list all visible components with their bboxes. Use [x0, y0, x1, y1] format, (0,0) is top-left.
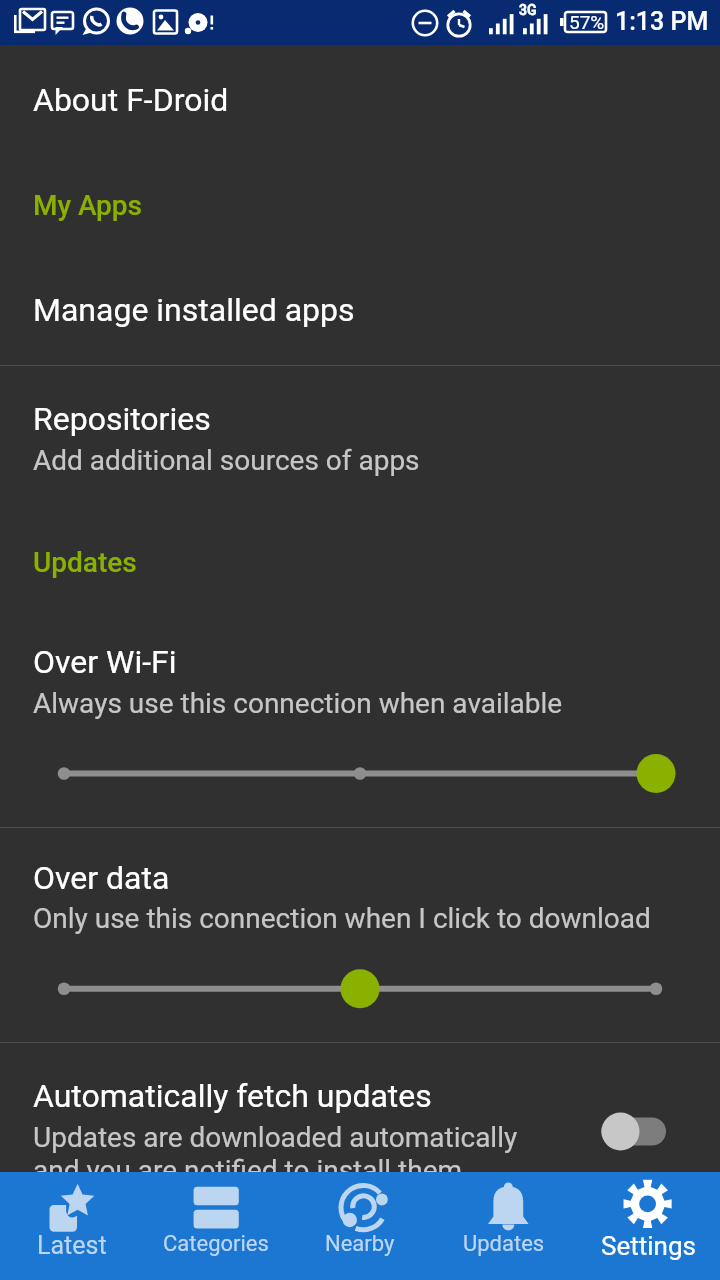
staticText: Only use this connection when I click to…: [33, 902, 651, 935]
staticText: 3G: [519, 2, 537, 18]
staticText: About F-Droid: [33, 81, 229, 119]
button[interactable]: Repositories: [0, 366, 720, 503]
button[interactable]: Nearby: [288, 1172, 432, 1280]
button[interactable]: Categories: [144, 1172, 288, 1280]
staticText: Categories: [163, 1231, 269, 1257]
button[interactable]: Over Wi-Fi: [0, 603, 720, 828]
staticText: Updates: [463, 1231, 545, 1257]
staticText: Always use this connection when availabl…: [33, 687, 563, 720]
staticText: Settings: [601, 1231, 696, 1261]
staticText: Latest: [37, 1231, 107, 1260]
staticText: Updates: [33, 546, 137, 579]
staticText: 57%: [569, 11, 605, 33]
button[interactable]: Manage installed apps: [0, 256, 720, 330]
staticText: Repositories: [33, 400, 211, 438]
staticText: Over Wi-Fi: [33, 643, 177, 681]
staticText: Updates are downloaded automatically and…: [33, 1121, 553, 1187]
button[interactable]: Over data: [0, 828, 720, 1042]
button[interactable]: Automatically fetch updates toggle, off: [590, 1107, 678, 1156]
button[interactable]: Latest: [0, 1172, 144, 1280]
staticText: Over data: [33, 859, 170, 897]
staticText: Automatically fetch updates: [33, 1077, 432, 1115]
staticText: 1:13 PM: [615, 7, 709, 36]
button[interactable]: About F-Droid: [0, 45, 720, 153]
staticText: Add additional sources of apps: [33, 444, 420, 477]
button[interactable]: Updates: [432, 1172, 576, 1280]
staticText: Manage installed apps: [33, 291, 355, 329]
staticText: My Apps: [33, 189, 143, 222]
button[interactable]: Automatically fetch updates: [0, 1043, 720, 1238]
staticText: Nearby: [325, 1231, 395, 1257]
button[interactable]: Settings: [576, 1172, 720, 1280]
